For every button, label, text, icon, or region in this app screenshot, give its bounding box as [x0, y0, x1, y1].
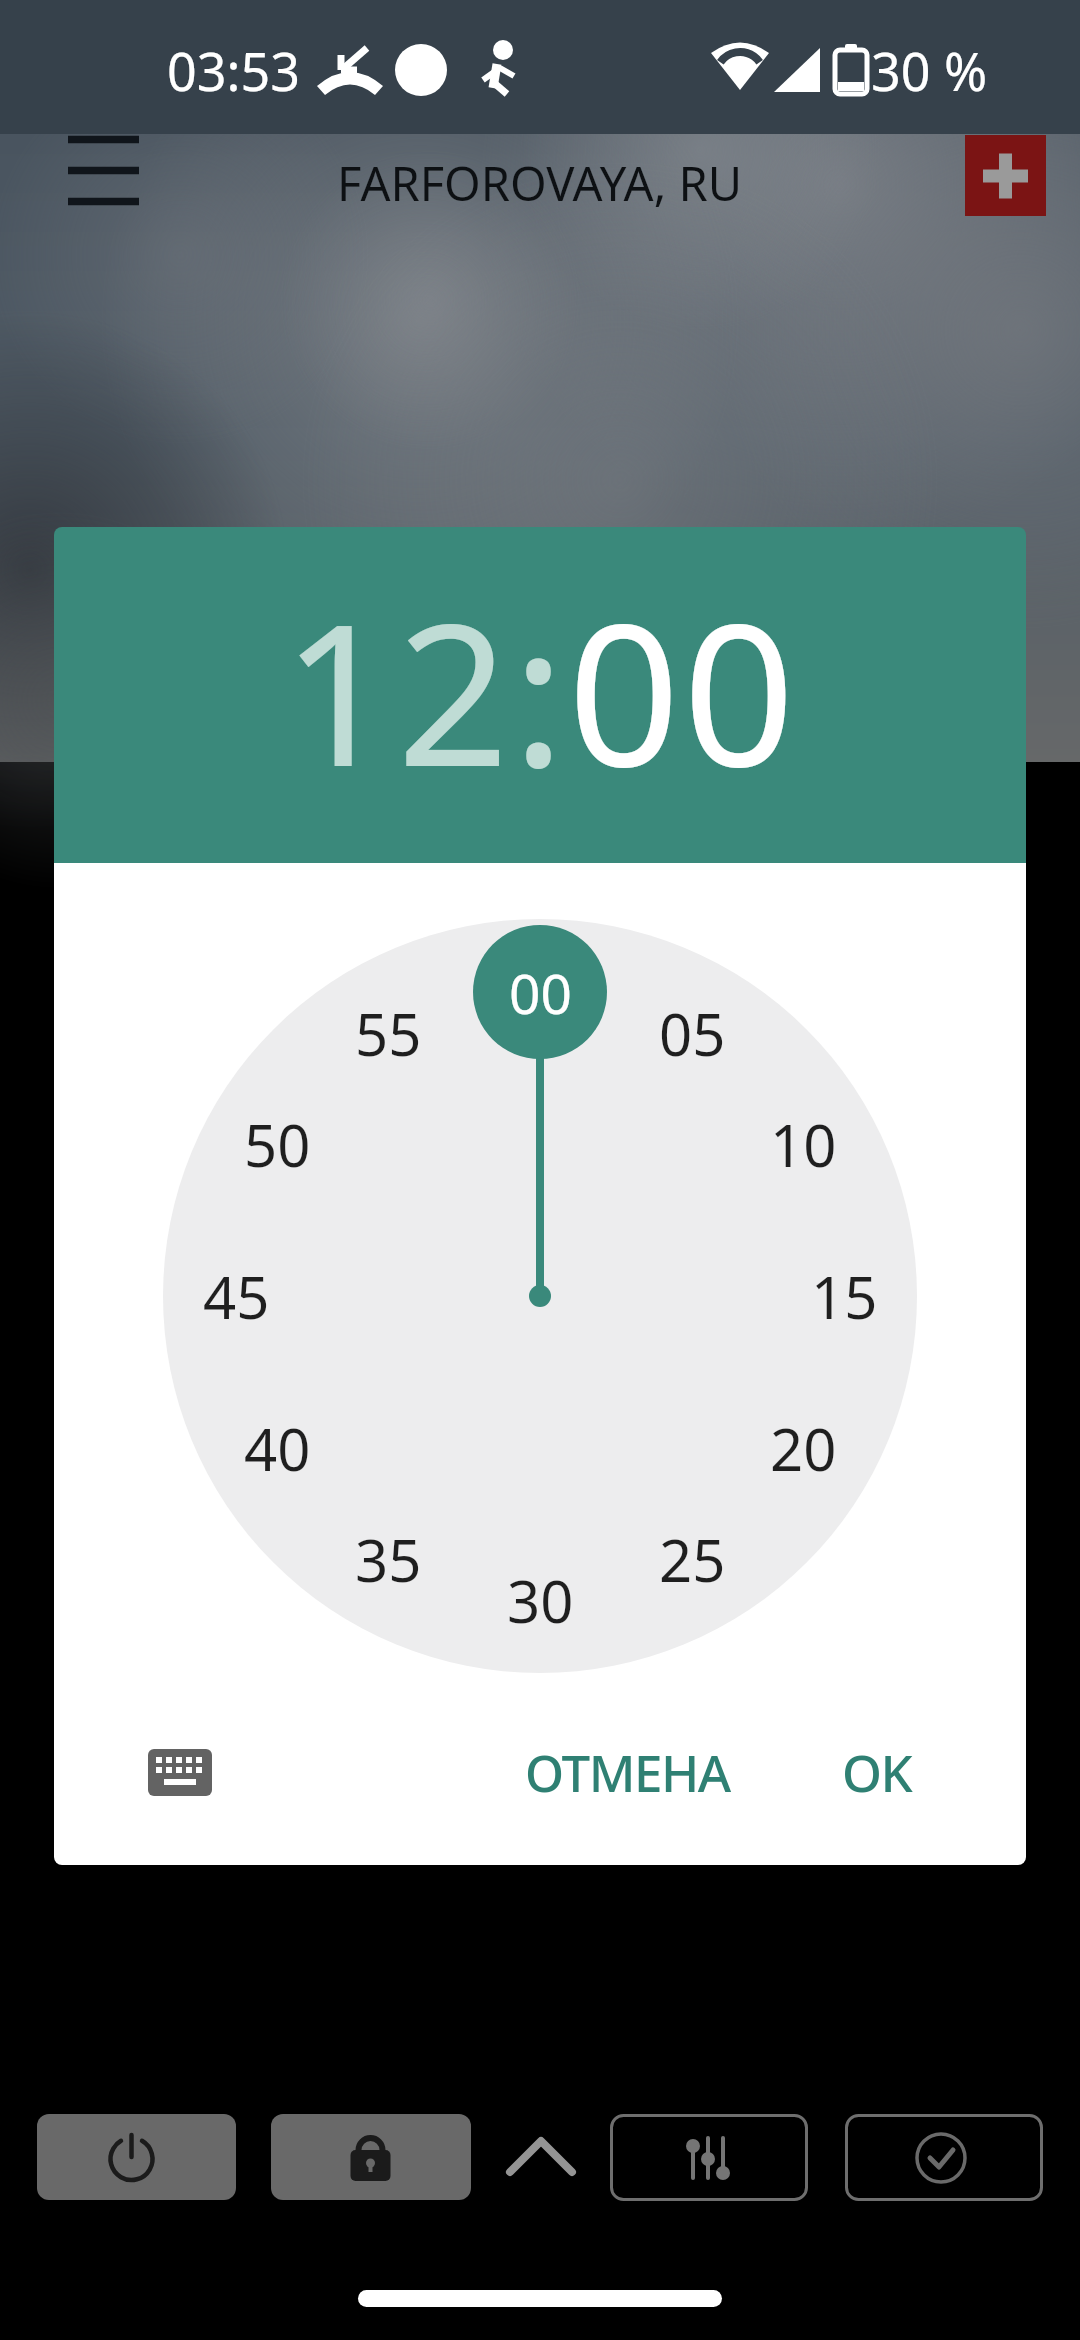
button[interactable] [50, 120, 155, 220]
staticText: 30 % [871, 35, 988, 105]
button[interactable]: 20 [743, 1408, 863, 1488]
staticText: 15 [811, 1257, 878, 1336]
staticText: OK [842, 1737, 912, 1806]
staticText: 03:53 [167, 35, 300, 105]
button[interactable]: 15 [784, 1256, 904, 1336]
button[interactable]: 25 [632, 1519, 752, 1599]
button[interactable] [130, 1730, 230, 1814]
button[interactable] [37, 2114, 236, 2200]
button[interactable]: 50 [217, 1104, 337, 1184]
staticText: ОТМЕНА [525, 1737, 730, 1806]
button[interactable]: ОТМЕНА [497, 1726, 757, 1816]
staticText: 30 [507, 1561, 574, 1640]
button[interactable] [965, 135, 1046, 216]
staticText: 10 [770, 1105, 837, 1184]
button[interactable] [845, 2114, 1043, 2201]
button[interactable]: 55 [328, 993, 448, 1073]
staticText: 55 [355, 994, 422, 1073]
button[interactable]: 10 [743, 1104, 863, 1184]
button[interactable]: 45 [176, 1256, 296, 1336]
staticText: 40 [244, 1409, 311, 1488]
staticText: 05 [659, 994, 726, 1073]
button[interactable]: 35 [328, 1519, 448, 1599]
button[interactable] [610, 2114, 808, 2201]
button[interactable]: 05 [632, 993, 752, 1073]
staticText: 25 [659, 1520, 726, 1599]
button[interactable]: 40 [217, 1408, 337, 1488]
button[interactable]: OK [807, 1726, 947, 1816]
staticText: FARFOROVAYA, RU [337, 151, 743, 215]
staticText: 45 [203, 1257, 270, 1336]
staticText: 12:00 [282, 556, 798, 823]
staticText: 20 [770, 1409, 837, 1488]
button[interactable]: 00 [480, 952, 600, 1032]
staticText: 35 [355, 1520, 422, 1599]
staticText: 00 [509, 955, 572, 1030]
button[interactable] [498, 2120, 584, 2196]
button[interactable]: 30 [480, 1560, 600, 1640]
staticText: 50 [244, 1105, 311, 1184]
button[interactable] [271, 2114, 471, 2200]
